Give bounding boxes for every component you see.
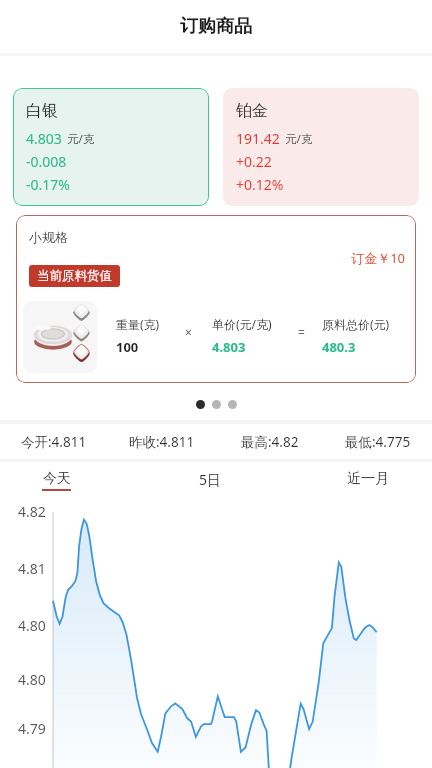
button[interactable]: 今天 [42,462,71,491]
staticText: 4.82 [18,502,46,520]
staticText: 昨收:4.811 [129,433,195,451]
staticText: 元/克 [67,131,95,147]
staticText: 4.803 [212,338,246,356]
staticText: 今开:4.811 [21,433,87,451]
staticText: 当前原料货值 [37,268,112,284]
staticText: = [298,324,305,340]
staticText: +0.12% [236,175,284,194]
staticText: 小规格 [29,229,68,245]
staticText: 4.80 [18,616,46,634]
staticText: 元/克 [285,131,313,147]
staticText: 订购商品 [180,15,252,38]
other: 银锭图片 [23,301,97,373]
staticText: 近一月 [347,470,388,488]
staticText: -0.17% [26,175,70,194]
staticText: 今天 [43,470,71,488]
staticText: × [185,324,192,340]
staticText: 最高:4.82 [241,433,299,451]
staticText: 订金￥10 [16,249,405,267]
button[interactable]: 近一月 [347,462,388,491]
staticText: 191.42 [236,129,280,148]
staticText: 重量(克) [116,316,160,332]
staticText: 最低:4.775 [345,433,411,451]
button[interactable]: 5日 [199,462,219,492]
staticText: 4.79 [18,719,46,737]
staticText: 4.803 [26,129,62,148]
staticText: 5日 [199,470,219,489]
staticText: 单价(元/克) [212,316,272,332]
button[interactable]: 铂金 [223,88,419,206]
staticText: 100 [116,338,139,356]
staticText: 铂金 [236,101,268,121]
button[interactable]: 订金￥10 [16,215,416,383]
staticText: 原料总价(元) [322,316,390,332]
staticText: 白银 [26,101,58,121]
staticText: 480.3 [322,338,356,356]
staticText: 4.81 [18,559,46,577]
button[interactable]: 白银 [13,88,209,206]
staticText: -0.008 [26,152,67,171]
staticText: 4.80 [18,670,46,688]
staticText: +0.22 [236,152,272,171]
